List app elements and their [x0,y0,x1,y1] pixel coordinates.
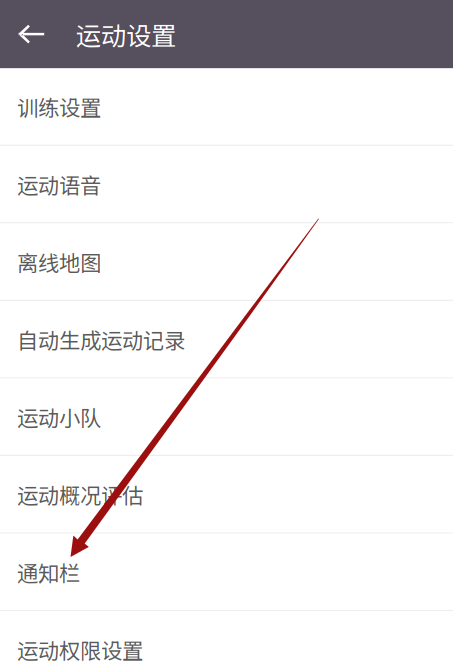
button[interactable]: 自动生成运动记录 [0,301,453,379]
button[interactable]: 通知栏 [0,534,453,611]
staticText: 运动权限设置 [17,634,143,665]
button[interactable]: 运动小队 [0,379,453,456]
staticText: 通知栏 [17,556,80,587]
staticText: 运动语音 [17,169,101,199]
button[interactable]: 运动概况评估 [0,456,453,534]
button[interactable]: 运动权限设置 [0,611,453,665]
staticText: 自动生成运动记录 [17,324,185,355]
staticText: 运动概况评估 [17,479,143,510]
button[interactable]: Back [0,0,62,68]
button[interactable]: 运动语音 [0,146,453,223]
staticText: 训练设置 [17,91,101,122]
staticText: 运动设置 [76,16,176,53]
button[interactable]: 离线地图 [0,223,453,301]
staticText: 运动小队 [17,401,101,432]
staticText: 离线地图 [17,246,101,277]
button[interactable]: 训练设置 [0,68,453,146]
